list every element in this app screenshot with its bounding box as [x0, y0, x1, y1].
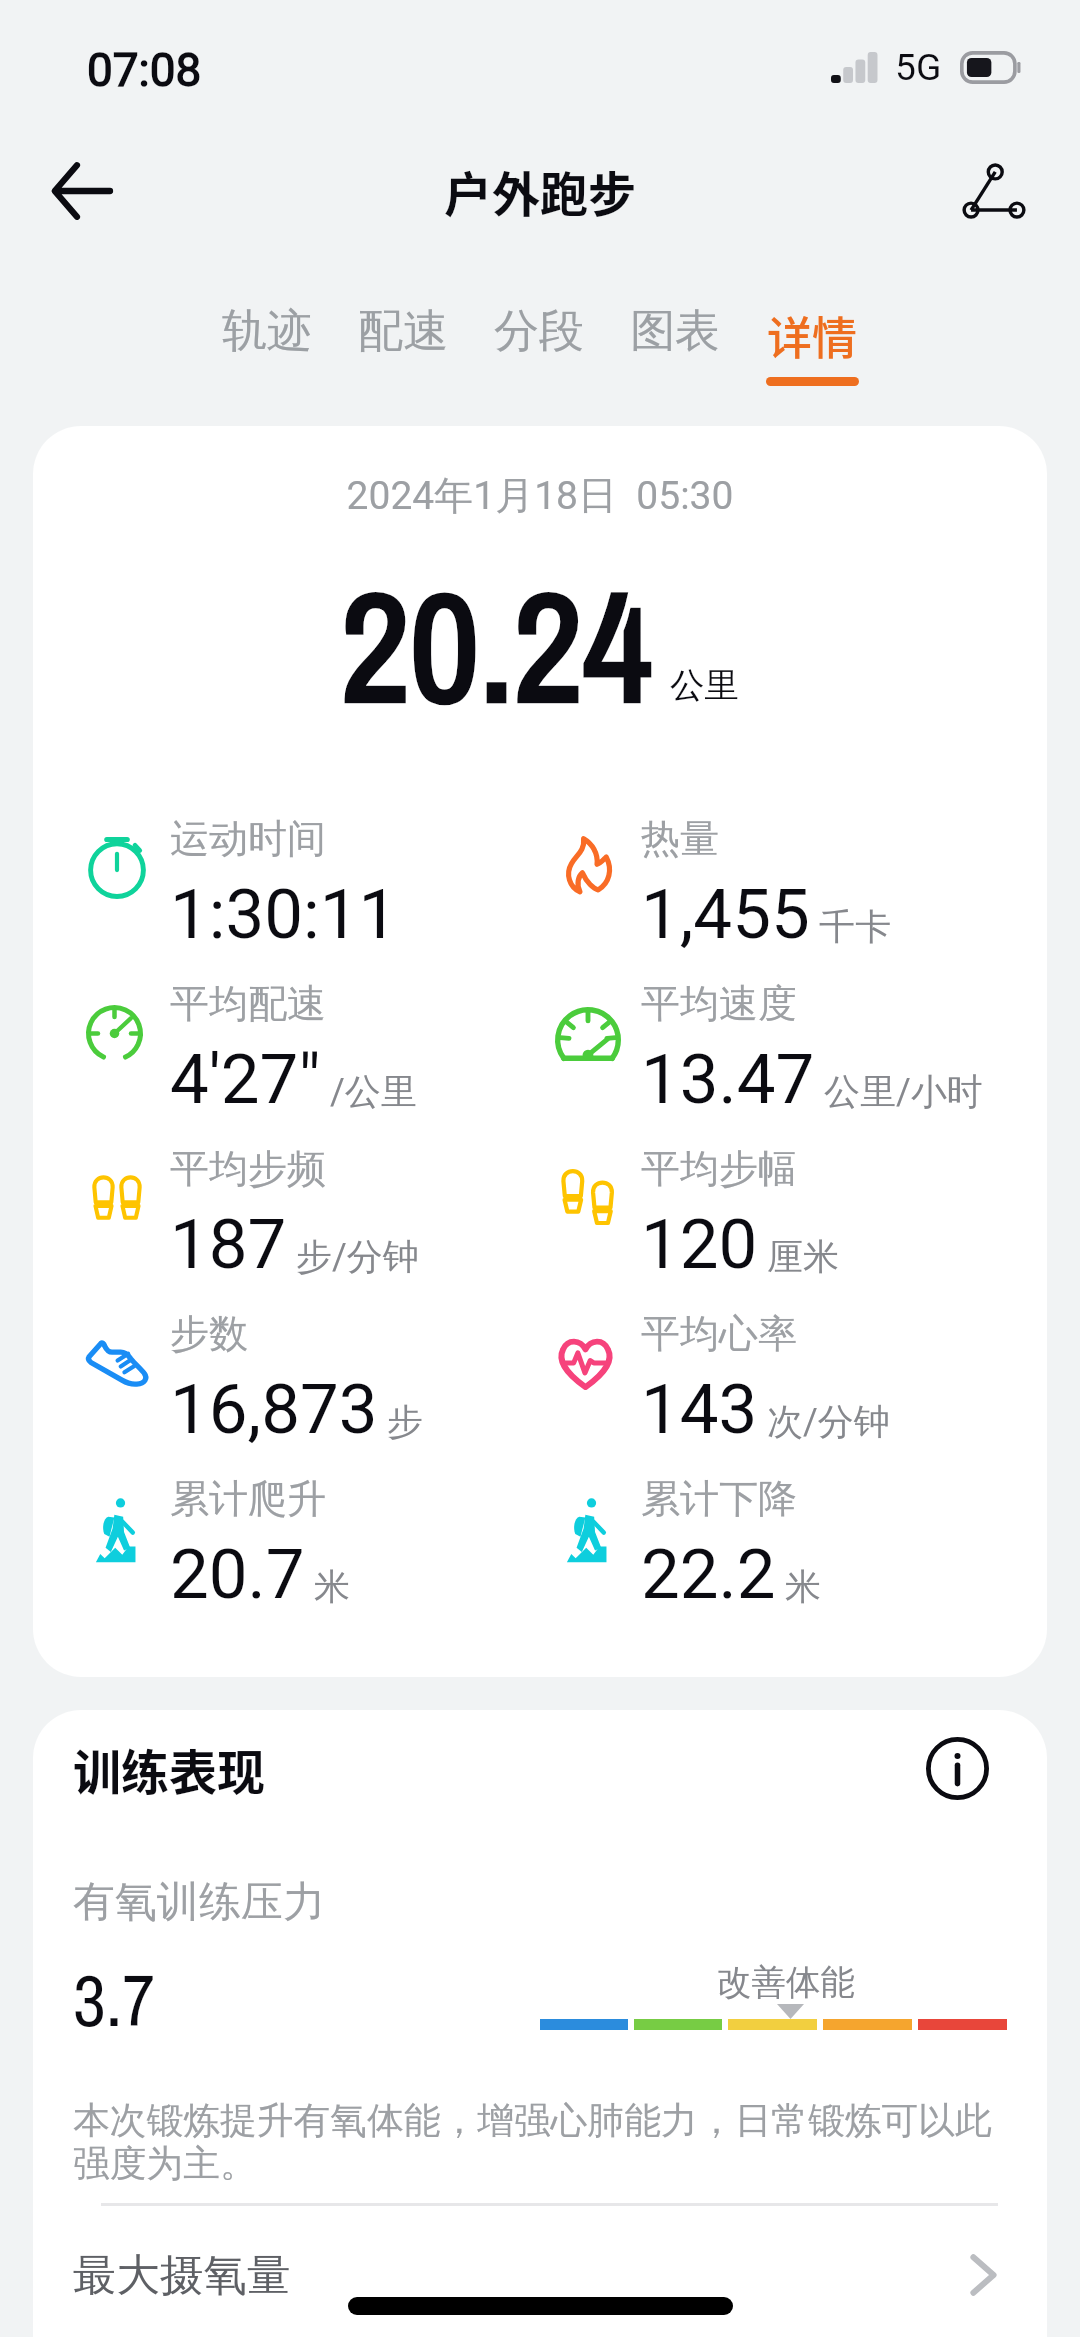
staticText: 3.7 — [73, 1951, 156, 2048]
staticText: 轨迹 — [222, 303, 312, 360]
staticText: 2024年1月18日 05:30 — [33, 471, 1047, 520]
button[interactable]: 配速 — [358, 303, 448, 369]
button[interactable]: 分段 — [494, 303, 584, 369]
staticText: /公里 — [330, 1069, 417, 1114]
staticText: 次/分钟 — [767, 1399, 890, 1444]
staticText: 累计下降 — [641, 1474, 797, 1523]
button[interactable]: Back — [3, 135, 159, 246]
button[interactable]: Share — [916, 135, 1072, 246]
staticText: 13.47 — [641, 1039, 815, 1120]
staticText: 1:30:11 — [170, 874, 398, 955]
button[interactable]: 详情 — [766, 303, 859, 386]
staticText: 187 — [170, 1204, 287, 1285]
staticText: 累计爬升 — [170, 1474, 326, 1523]
staticText: 步数 — [170, 1309, 248, 1358]
staticText: 步/分钟 — [296, 1234, 419, 1279]
staticText: 分段 — [494, 303, 584, 360]
staticText: 平均步频 — [170, 1144, 326, 1193]
staticText: 厘米 — [767, 1234, 839, 1279]
staticText: 4'27" — [170, 1039, 321, 1120]
staticText: 5G — [895, 45, 942, 89]
staticText: 07:08 — [87, 43, 202, 97]
staticText: 图表 — [630, 303, 720, 360]
staticText: 最大摄氧量 — [73, 2248, 291, 2303]
staticText: 平均心率 — [641, 1309, 797, 1358]
staticText: 公里/小时 — [824, 1069, 983, 1114]
staticText: 详情 — [767, 303, 858, 368]
staticText: 步 — [387, 1399, 423, 1444]
button[interactable]: 最大摄氧量 — [73, 2200, 1007, 2337]
staticText: 配速 — [358, 303, 448, 360]
staticText: 有氧训练压力 — [73, 1876, 325, 1929]
staticText: 20.7 — [170, 1534, 305, 1615]
staticText: 运动时间 — [170, 814, 326, 863]
staticText: 热量 — [641, 814, 719, 863]
staticText: 143 — [641, 1369, 758, 1450]
staticText: 1,455 — [641, 874, 810, 955]
staticText: 公里 — [670, 664, 739, 707]
staticText: 本次锻炼提升有氧体能，增强心肺能力，日常锻炼可以此强度为主。 — [73, 2098, 1007, 2187]
staticText: 户外跑步 — [444, 156, 637, 226]
staticText: 平均速度 — [641, 979, 797, 1028]
button[interactable]: Info — [908, 1719, 1007, 1818]
staticText: 千卡 — [819, 904, 891, 949]
staticText: 20.24 — [341, 544, 652, 748]
button[interactable]: 图表 — [630, 303, 720, 369]
staticText: 120 — [641, 1204, 758, 1285]
staticText: 改善体能 — [717, 1961, 855, 2004]
staticText: 米 — [314, 1564, 350, 1609]
staticText: 训练表现 — [73, 1734, 266, 1804]
staticText: 22.2 — [641, 1534, 776, 1615]
button[interactable]: 轨迹 — [222, 303, 312, 369]
staticText: 16,873 — [170, 1369, 378, 1450]
staticText: 米 — [785, 1564, 821, 1609]
staticText: 平均步幅 — [641, 1144, 797, 1193]
staticText: 平均配速 — [170, 979, 326, 1028]
